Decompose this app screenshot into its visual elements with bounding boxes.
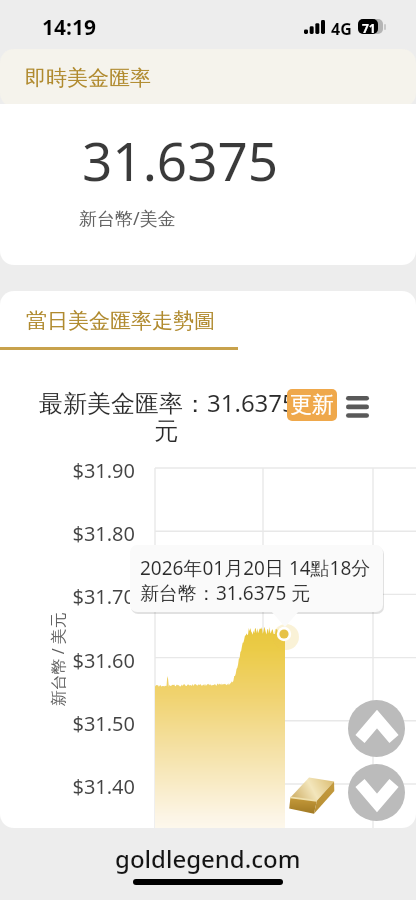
button[interactable]: 即時美金匯率 <box>0 49 416 107</box>
staticText: 4G <box>331 18 352 40</box>
button[interactable]: 更新 <box>287 389 337 421</box>
staticText: 即時美金匯率 <box>25 65 151 91</box>
staticText: $31.70 <box>0 583 135 610</box>
staticText: $31.80 <box>0 520 135 547</box>
staticText: $31.50 <box>0 710 135 737</box>
staticText: 新台幣 / 美元 <box>46 611 68 706</box>
staticText: 最新美金匯率：31.6375 <box>39 386 296 419</box>
button[interactable]: Menu <box>346 392 369 418</box>
button[interactable]: 當日美金匯率走勢圖 <box>0 291 416 350</box>
staticText: 31.6375 <box>82 124 279 196</box>
staticText: 71 <box>362 20 376 36</box>
button[interactable]: Scroll up <box>348 700 405 757</box>
staticText: 更新 <box>290 391 334 419</box>
staticText: $31.90 <box>0 457 135 484</box>
staticText: 元 <box>154 416 178 446</box>
staticText: $31.60 <box>0 647 135 674</box>
staticText: 14:19 <box>42 13 96 42</box>
staticText: 2026年01月20日 14點18分 <box>140 555 371 581</box>
staticText: 新台幣：31.6375 元 <box>140 580 311 606</box>
staticText: 當日美金匯率走勢圖 <box>26 308 215 334</box>
staticText: $31.40 <box>0 773 135 800</box>
staticText: goldlegend.com <box>115 842 301 875</box>
button[interactable]: Scroll down <box>348 764 405 821</box>
staticText: 新台幣/美金 <box>79 206 176 231</box>
